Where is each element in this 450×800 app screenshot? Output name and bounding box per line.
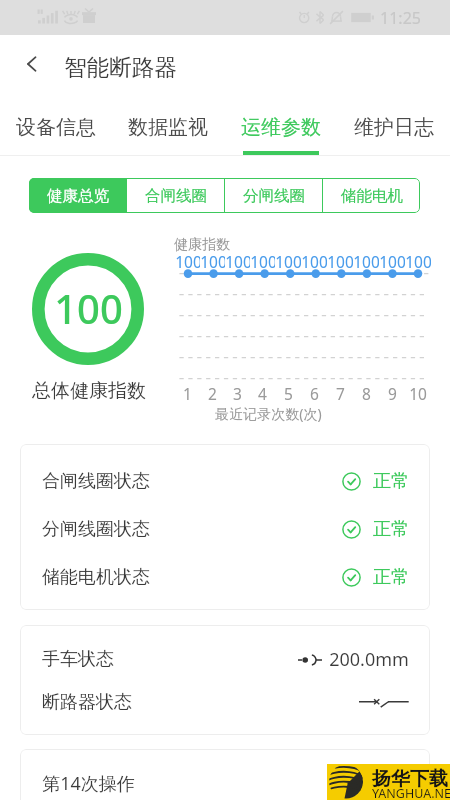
staticText: 100 xyxy=(200,251,225,272)
button[interactable]: 分闸线圈状态 xyxy=(20,505,430,553)
staticText: 扬华下载 xyxy=(372,767,448,791)
staticText: 100 xyxy=(353,251,379,272)
staticText: 储能电机状态 xyxy=(42,566,150,589)
staticText: 5 xyxy=(284,383,293,404)
staticText: 合闸线圈状态 xyxy=(42,470,150,493)
staticText: 维护日志 xyxy=(354,115,434,140)
staticText: 合闸线圈 xyxy=(145,186,207,206)
button[interactable]: Back xyxy=(13,45,51,83)
staticText: 100 xyxy=(175,251,200,272)
staticText: 100 xyxy=(275,251,301,272)
staticText: 储能电机 xyxy=(341,186,403,206)
staticText: 总体健康指数 xyxy=(32,379,146,403)
staticText: 8 xyxy=(362,383,371,404)
button[interactable]: 设备信息 xyxy=(0,92,112,156)
staticText: 11:25 xyxy=(380,7,421,29)
button[interactable]: 手车状态 xyxy=(20,638,430,681)
staticText: 9 xyxy=(388,383,397,404)
staticText: 设备信息 xyxy=(16,115,96,140)
button[interactable]: 分闸线圈 xyxy=(225,178,322,213)
staticText: 100 xyxy=(327,251,353,272)
button[interactable]: 健康总览 xyxy=(29,178,126,213)
staticText: 运维参数 xyxy=(241,115,321,140)
staticText: 4 xyxy=(258,383,267,404)
staticText: 100 xyxy=(301,251,327,272)
staticText: 7 xyxy=(336,383,345,404)
button[interactable]: 运维参数 xyxy=(224,92,337,156)
staticText: 100 xyxy=(225,251,250,272)
staticText: 智能断路器 xyxy=(64,53,177,81)
staticText: 手车状态 xyxy=(42,648,114,671)
staticText: 断路器状态 xyxy=(42,691,132,714)
staticText: 健康总览 xyxy=(47,186,109,206)
staticText: 200.0mm xyxy=(329,647,409,672)
staticText: 100 xyxy=(379,251,405,272)
staticText: 分闸线圈状态 xyxy=(42,518,150,541)
staticText: 正常 xyxy=(373,470,409,493)
staticText: 3 xyxy=(233,383,242,404)
button[interactable]: 储能电机状态 xyxy=(20,553,430,601)
button[interactable]: 维护日志 xyxy=(337,92,450,156)
staticText: 正常 xyxy=(373,566,409,589)
staticText: 第14次操作 xyxy=(42,771,135,796)
staticText: 100 xyxy=(250,251,275,272)
staticText: 最近记录次数(次) xyxy=(215,404,322,423)
staticText: YANGHUA.NET xyxy=(372,785,450,800)
button[interactable]: 合闸线圈状态 xyxy=(20,457,430,505)
staticText: 10 xyxy=(409,383,427,404)
button[interactable]: 第14次操作 xyxy=(20,762,430,800)
staticText: 100 xyxy=(405,251,431,272)
button[interactable]: 断路器状态 xyxy=(20,681,430,724)
button[interactable]: 合闸线圈 xyxy=(127,178,224,213)
button[interactable]: 数据监视 xyxy=(112,92,224,156)
staticText: 100 xyxy=(54,281,123,335)
staticText: 数据监视 xyxy=(128,115,208,140)
staticText: 6 xyxy=(310,383,319,404)
staticText: 分闸线圈 xyxy=(243,186,305,206)
staticText: 健康指数 xyxy=(174,236,230,254)
staticText: 正常 xyxy=(373,518,409,541)
staticText: 1 xyxy=(183,383,192,404)
button[interactable]: 储能电机 xyxy=(323,178,420,213)
staticText: 2 xyxy=(208,383,217,404)
